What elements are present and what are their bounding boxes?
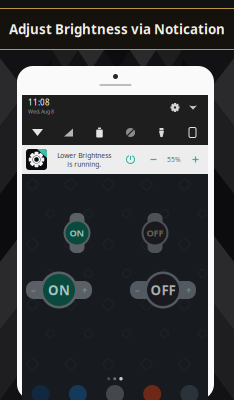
- staticText: 55%: [167, 155, 181, 164]
- button[interactable]: Camera: [59, 384, 96, 400]
- staticText: +: [152, 216, 157, 227]
- button[interactable]: Settings: [166, 98, 184, 116]
- staticText: ON: [48, 281, 70, 299]
- staticText: +: [186, 284, 191, 296]
- button[interactable]: Mobile data: [53, 120, 84, 145]
- button[interactable]: Flashlight: [146, 120, 177, 145]
- button[interactable]: Wi-Fi: [22, 120, 53, 145]
- button[interactable]: Assistant: [96, 384, 134, 400]
- staticText: ON: [69, 227, 84, 239]
- button[interactable]: Browser: [134, 384, 171, 400]
- button[interactable]: Brightness on: [23, 270, 95, 310]
- staticText: –: [31, 284, 36, 296]
- button[interactable]: Do not disturb: [115, 120, 146, 145]
- button[interactable]: Brightness off: [127, 270, 199, 310]
- button[interactable]: Phone: [22, 384, 59, 400]
- button[interactable]: Brightness off: [137, 211, 173, 255]
- staticText: Lower Brightness is running.: [57, 151, 111, 169]
- button[interactable]: Brightness on: [59, 211, 95, 255]
- button[interactable]: Settings: [171, 384, 208, 400]
- staticText: –: [135, 284, 140, 296]
- staticText: –: [75, 239, 79, 250]
- staticText: OFF: [150, 281, 175, 299]
- staticText: –: [153, 239, 157, 250]
- staticText: 11:08: [28, 97, 50, 108]
- button[interactable]: Battery saver: [84, 120, 115, 145]
- staticText: +: [74, 216, 79, 227]
- staticText: OFF: [146, 227, 163, 239]
- staticText: Adjust Brightness via Notication: [9, 20, 225, 38]
- staticText: +: [82, 284, 87, 296]
- button[interactable]: Lower Brightness is running: [22, 145, 208, 174]
- staticText: Wed, Aug 8: [28, 108, 54, 115]
- button[interactable]: Cast screen: [177, 120, 208, 145]
- button[interactable]: Expand quick settings: [184, 98, 202, 116]
